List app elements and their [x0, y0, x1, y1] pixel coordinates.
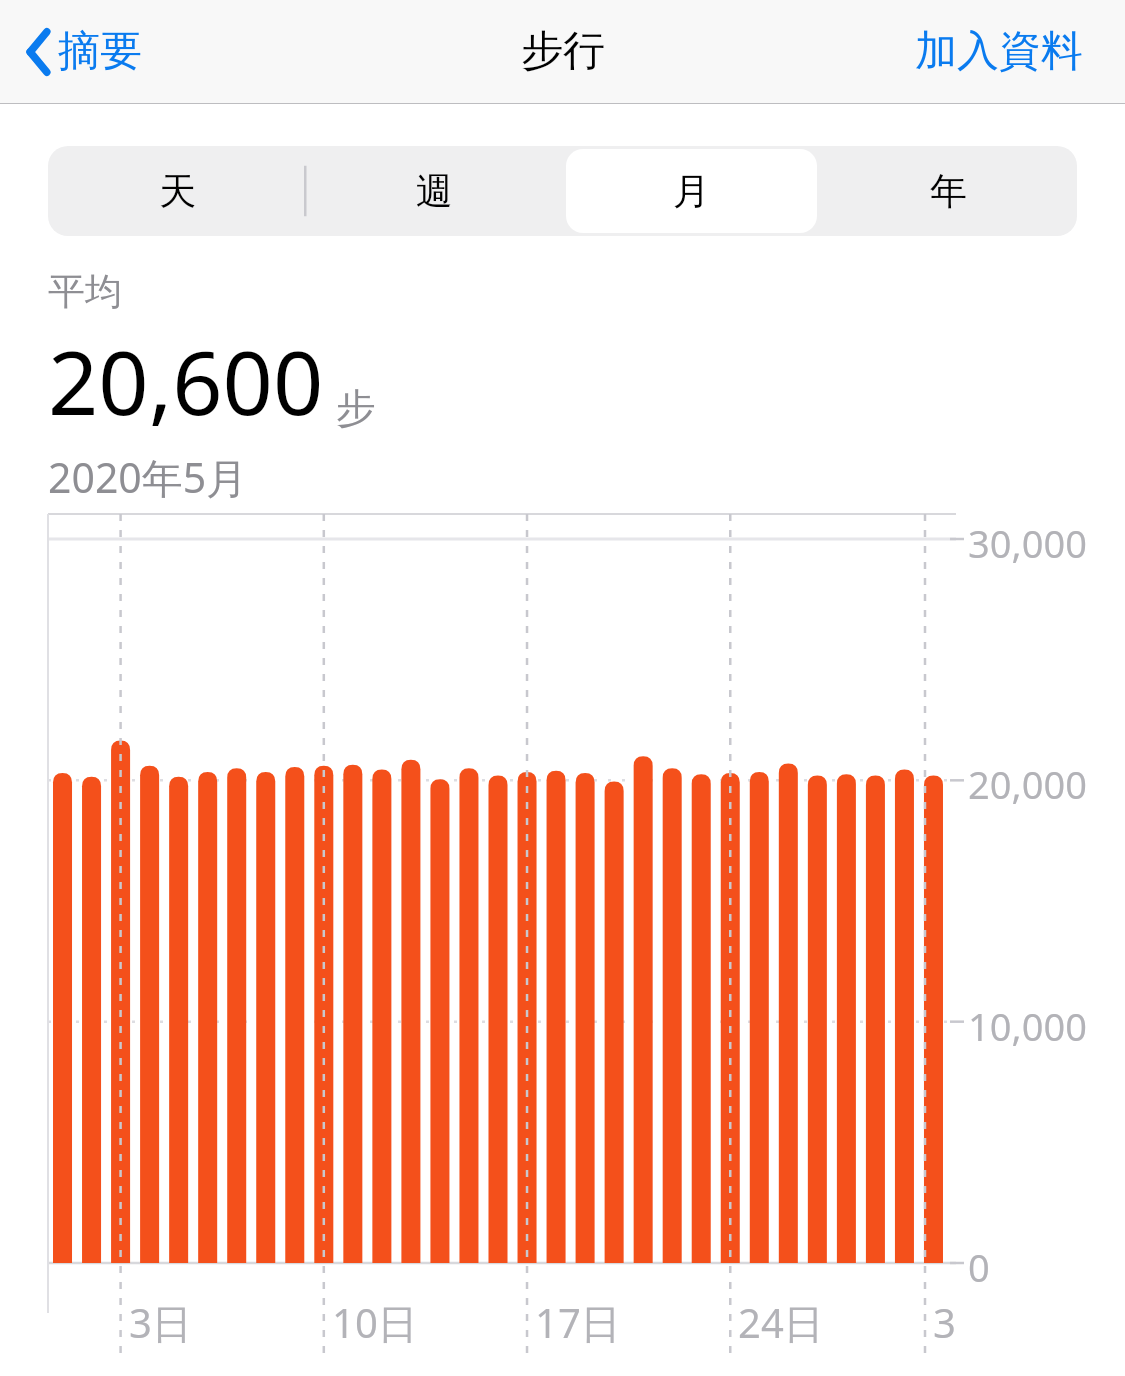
staticText: 步行 — [521, 25, 605, 78]
staticText: 天 — [159, 168, 196, 215]
staticText: 24日 — [738, 1295, 824, 1350]
staticText: 3 — [933, 1295, 956, 1349]
staticText: 摘要 — [58, 25, 142, 78]
staticText: 步 — [336, 383, 376, 433]
staticText: 20,000 — [968, 758, 1087, 810]
button[interactable]: 週 — [309, 149, 560, 233]
staticText: 10,000 — [968, 1000, 1087, 1052]
button[interactable]: 天 — [51, 149, 303, 233]
staticText: 加入資料 — [915, 25, 1083, 78]
staticText: 月 — [673, 168, 710, 215]
button[interactable]: 摘要 — [20, 19, 148, 84]
staticText: 10日 — [332, 1295, 418, 1350]
staticText: 3日 — [129, 1295, 192, 1350]
staticText: 2020年5月 — [48, 449, 248, 505]
staticText: 平均 — [48, 268, 122, 315]
staticText: 0 — [968, 1241, 990, 1293]
staticText: 週 — [416, 168, 453, 215]
staticText: 20,600 — [48, 321, 324, 441]
staticText: 30,000 — [968, 517, 1087, 569]
button[interactable]: 加入資料 — [911, 19, 1087, 84]
button[interactable]: 年 — [823, 149, 1074, 233]
staticText: 17日 — [535, 1295, 621, 1350]
staticText: 年 — [930, 168, 967, 215]
button[interactable]: 月 — [566, 149, 817, 233]
